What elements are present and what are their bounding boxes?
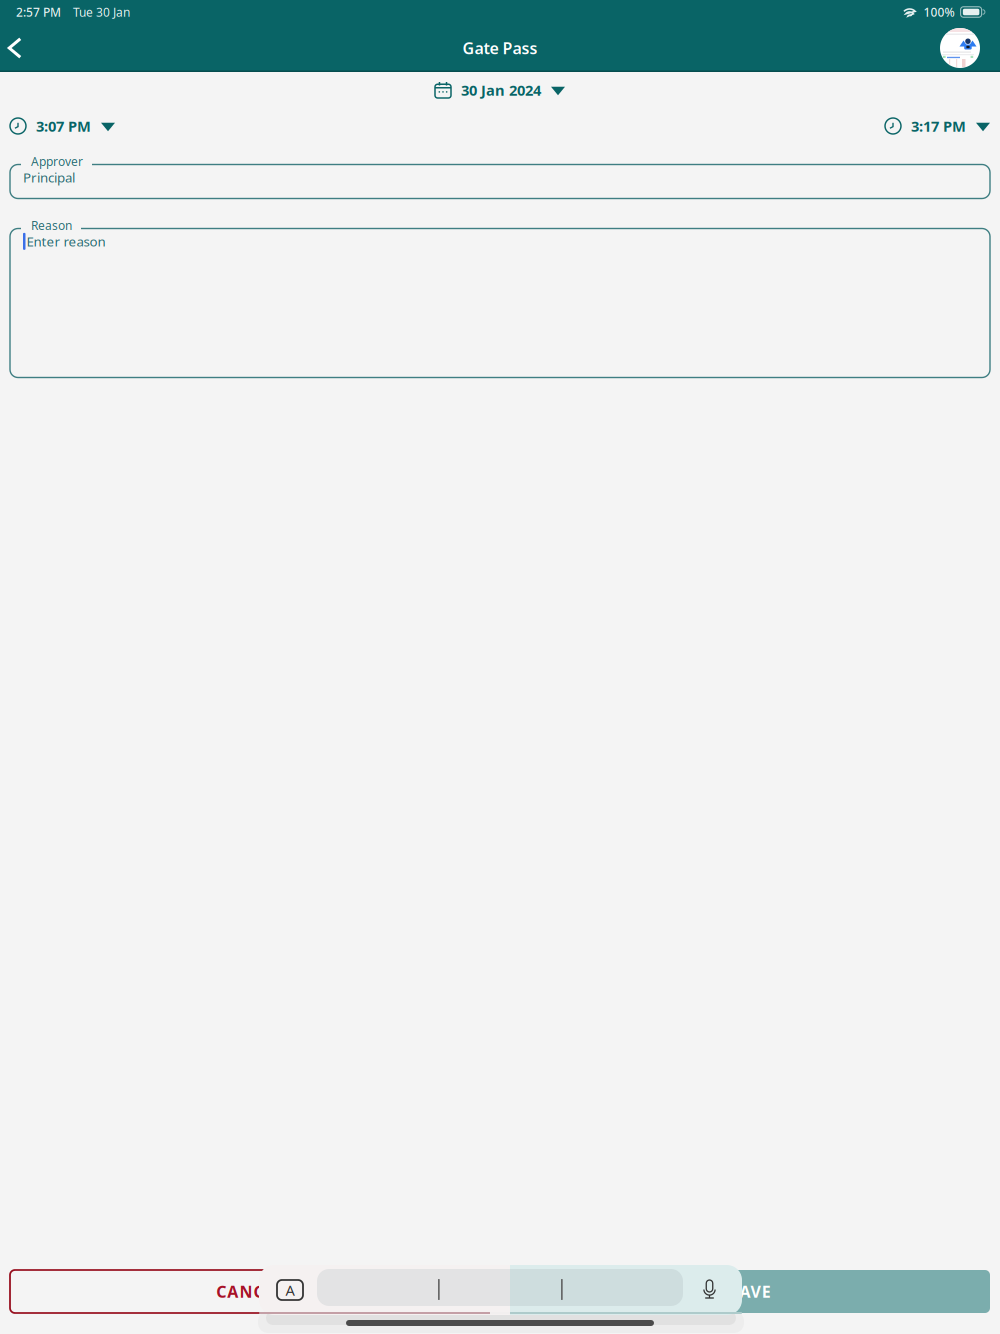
button[interactable]: Keyboard layout [277, 1280, 303, 1300]
button[interactable]: Profile [936, 24, 984, 72]
staticText: Gate Pass [462, 37, 537, 59]
staticText: 3:07 PM [36, 116, 91, 136]
button[interactable]: Back [0, 24, 29, 72]
staticText: Enter reason [26, 232, 105, 250]
staticText: Approver [31, 153, 83, 169]
staticText: A [285, 1280, 294, 1300]
staticText: Reason [31, 217, 72, 233]
staticText: 3:17 PM [911, 116, 966, 136]
staticText: SAVE [729, 1281, 771, 1302]
button[interactable]: CANCEL [10, 1270, 490, 1313]
staticText: 30 Jan 2024 [461, 80, 541, 100]
staticText: CANCEL [216, 1281, 284, 1302]
staticText: 100% [918, 4, 961, 20]
staticText: Principal [23, 168, 75, 186]
staticText: 2:57 PM [16, 4, 61, 20]
button[interactable]: 3:17 PM [885, 108, 1000, 144]
button[interactable]: SAVE [510, 1270, 990, 1313]
button[interactable]: 30 Jan 2024 [435, 72, 565, 108]
button[interactable]: 3:07 PM [0, 108, 115, 144]
staticText: Tue 30 Jan [61, 4, 130, 20]
button[interactable]: Dictate [702, 1280, 717, 1299]
